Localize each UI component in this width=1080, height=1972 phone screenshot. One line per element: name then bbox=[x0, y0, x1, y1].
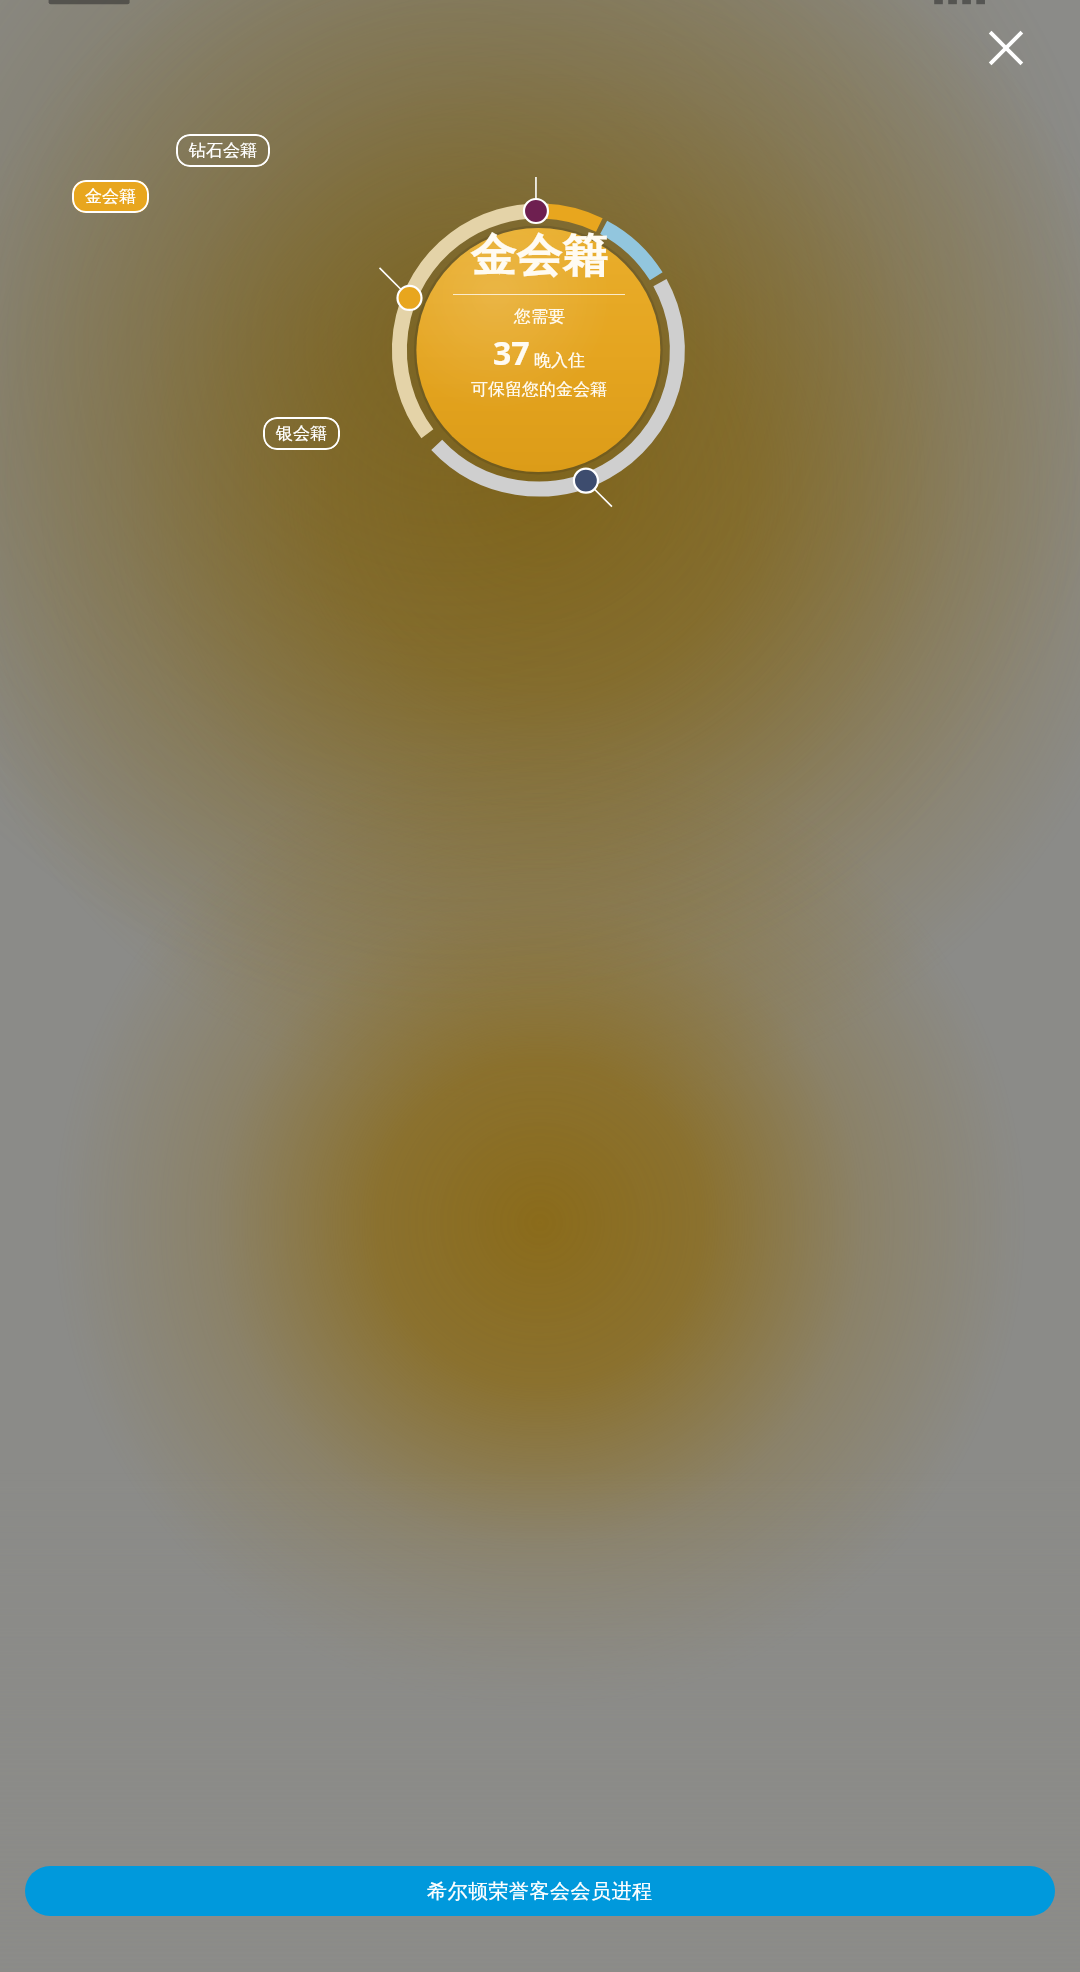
staticText: 银会籍 bbox=[276, 423, 327, 444]
button[interactable]: 钻石会籍 bbox=[176, 134, 270, 167]
staticText: 可保留您的金会籍 bbox=[471, 379, 607, 400]
button[interactable]: 金会籍 bbox=[72, 180, 149, 213]
staticText: 晚入住 bbox=[534, 350, 585, 371]
staticText: 您需要 bbox=[514, 306, 565, 327]
button[interactable]: 希尔顿荣誉客会会员进程 bbox=[25, 1866, 1055, 1916]
staticText: 金会籍 bbox=[470, 228, 608, 285]
staticText: 希尔顿荣誉客会会员进程 bbox=[427, 1879, 653, 1904]
button[interactable]: 关闭 bbox=[976, 18, 1036, 78]
button[interactable]: 银会籍 bbox=[263, 417, 340, 450]
staticText: 钻石会籍 bbox=[189, 140, 257, 161]
staticText: 37 bbox=[493, 331, 530, 375]
staticText: 金会籍 bbox=[85, 186, 136, 207]
